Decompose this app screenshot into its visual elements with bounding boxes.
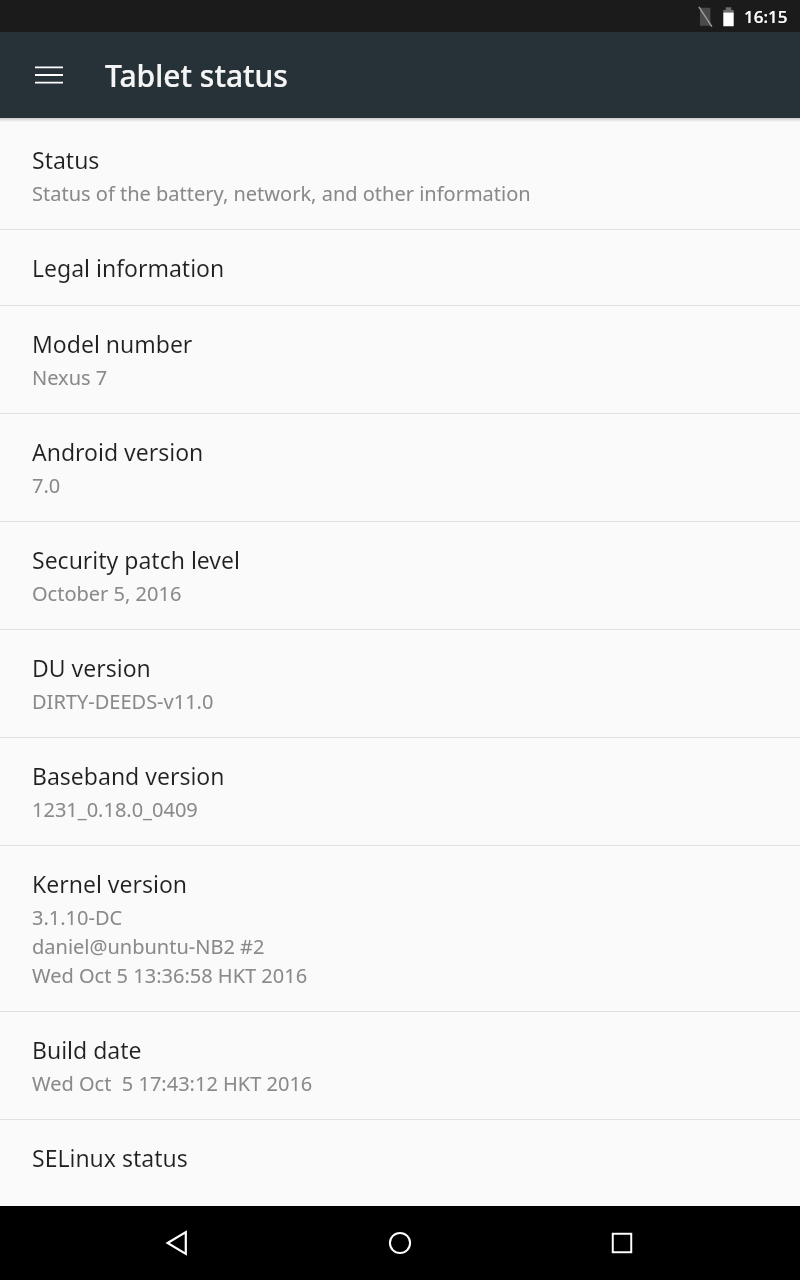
staticText: 1231_0.18.0_0409 — [32, 796, 198, 823]
staticText: Status — [32, 144, 100, 175]
staticText: 3.1.10-DC — [32, 904, 123, 931]
staticText: Legal information — [32, 252, 225, 283]
staticText: DU version — [32, 652, 151, 683]
button[interactable]: Security patch level — [0, 522, 800, 629]
staticText: Wed Oct 5 17:43:12 HKT 2016 — [32, 1070, 313, 1097]
staticText: daniel@unbuntu-NB2 #2 — [32, 933, 265, 960]
button[interactable]: Open navigation menu — [22, 48, 76, 102]
staticText: Wed Oct 5 13:36:58 HKT 2016 — [32, 962, 308, 989]
button[interactable]: Legal information — [0, 230, 800, 305]
staticText: October 5, 2016 — [32, 580, 182, 607]
staticText: Nexus 7 — [32, 364, 108, 391]
staticText: SELinux status — [32, 1142, 188, 1173]
button[interactable]: Baseband version — [0, 738, 800, 845]
button[interactable]: Android version — [0, 414, 800, 521]
staticText: 7.0 — [32, 472, 61, 499]
staticText: Tablet status — [105, 55, 288, 96]
button[interactable]: Recent apps — [585, 1206, 659, 1280]
staticText: DIRTY-DEEDS-v11.0 — [32, 688, 214, 715]
staticText: 16:15 — [744, 5, 788, 28]
staticText: Android version — [32, 436, 204, 467]
button[interactable]: SELinux status — [0, 1120, 800, 1206]
staticText: Status of the battery, network, and othe… — [32, 180, 531, 207]
button[interactable]: Build date — [0, 1012, 800, 1119]
button[interactable]: DU version — [0, 630, 800, 737]
staticText: Model number — [32, 328, 193, 359]
staticText: Security patch level — [32, 544, 240, 575]
button[interactable]: Kernel version — [0, 846, 800, 1011]
staticText: Baseband version — [32, 760, 225, 791]
button[interactable]: Model number — [0, 306, 800, 413]
staticText: Kernel version — [32, 868, 188, 899]
button[interactable]: Back — [141, 1206, 215, 1280]
button[interactable]: Status — [0, 122, 800, 229]
staticText: Build date — [32, 1034, 142, 1065]
button[interactable]: Home — [363, 1206, 437, 1280]
